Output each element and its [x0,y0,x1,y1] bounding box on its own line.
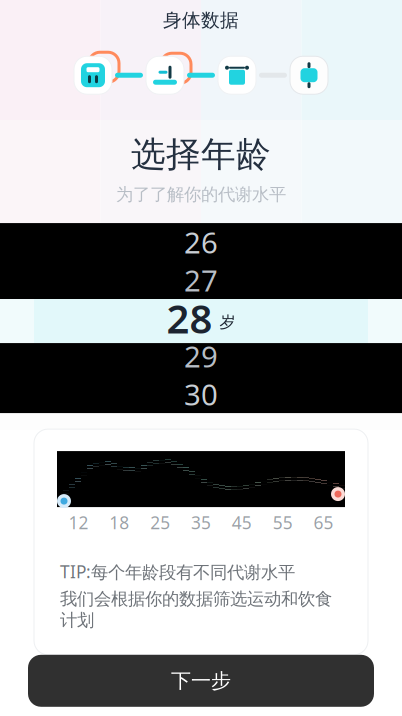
staticText: 身体数据 [163,9,239,32]
staticText: 29 [184,337,218,376]
staticText: 65 [314,511,334,534]
staticText: TIP:每个年龄段有不同代谢水平 [60,560,295,583]
staticText: 55 [273,511,293,534]
staticText: 岁 [219,312,235,332]
staticText: 25 [150,511,170,534]
staticText: 为了了解你的代谢水平 [116,184,286,205]
staticText: 18 [109,511,129,534]
button[interactable]: 下一步 [28,655,374,707]
staticText: 35 [191,511,211,534]
staticText: 12 [68,511,88,534]
staticText: 30 [184,375,218,414]
staticText: 27 [184,261,218,300]
staticText: 45 [232,511,252,534]
staticText: 28 [166,291,212,345]
staticText: 选择年龄 [131,133,271,176]
staticText: 我们会根据你的数据筛选运动和饮食计划 [60,588,332,631]
staticText: 下一步 [171,668,231,693]
staticText: 26 [184,223,218,262]
